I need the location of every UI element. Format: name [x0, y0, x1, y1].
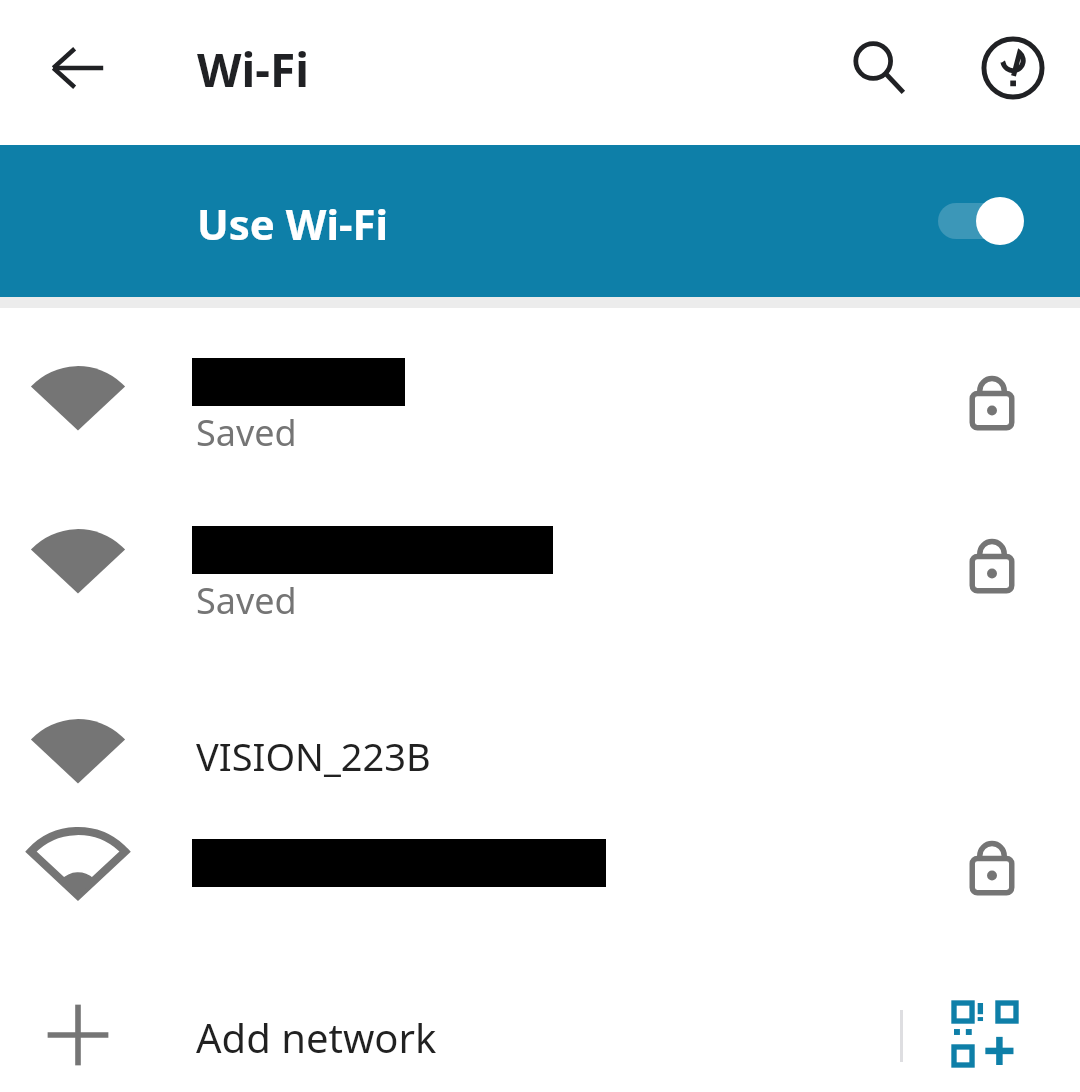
button[interactable]: VISION_223B [0, 635, 1080, 795]
button[interactable]: Back [32, 22, 124, 114]
staticText: Saved [196, 576, 297, 625]
staticText: Wi-Fi [197, 38, 309, 101]
staticText: Saved [196, 408, 297, 457]
staticText: Add network [196, 1010, 437, 1064]
button[interactable]: Add network [0, 976, 1080, 1092]
other: Secured network [966, 832, 1018, 898]
staticText: Use Wi-Fi [197, 195, 389, 252]
button[interactable]: Secured network [0, 795, 1080, 955]
staticText: VISION_223B [196, 730, 431, 782]
other: Secured network [966, 367, 1018, 433]
button[interactable]: Use Wi-Fi [0, 145, 1080, 297]
other: Secured network [966, 530, 1018, 596]
button[interactable]: Help [967, 22, 1059, 114]
button[interactable]: Saved [0, 471, 1080, 635]
button[interactable]: Scan QR code [930, 990, 1040, 1078]
button[interactable]: Saved [0, 308, 1080, 471]
button[interactable]: Search [833, 22, 925, 114]
